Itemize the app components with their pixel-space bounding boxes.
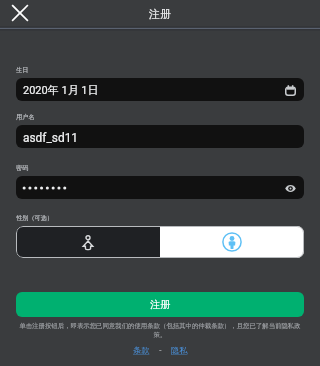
button[interactable]: Close xyxy=(6,0,33,27)
staticText: 单击注册按钮后，即表示您已同意我们的使用条款（包括其中的仲裁条款），且您已了解当… xyxy=(16,322,304,339)
button[interactable]: 2020年 1月 1日 xyxy=(16,78,304,101)
staticText: 注册 xyxy=(149,7,171,21)
staticText: 性别（可选） xyxy=(16,214,54,222)
button[interactable]: asdf_sd11 xyxy=(16,125,304,148)
button[interactable]: Show password xyxy=(16,176,304,199)
staticText: 注册 xyxy=(150,298,170,311)
button[interactable]: Female xyxy=(160,226,304,258)
staticText: 条款 xyxy=(133,345,150,355)
staticText: 生日 xyxy=(16,66,29,74)
staticText: 用户名 xyxy=(16,113,35,121)
staticText: asdf_sd11 xyxy=(23,131,79,145)
button[interactable]: Male xyxy=(16,226,160,258)
staticText: 隐私 xyxy=(171,345,188,355)
staticText: - xyxy=(159,344,162,355)
button[interactable]: Pick date xyxy=(281,81,299,99)
staticText: 2020年 1月 1日 xyxy=(23,83,99,97)
staticText: 密码 xyxy=(16,164,29,172)
button[interactable]: Show password xyxy=(281,179,299,197)
button[interactable]: 条款 xyxy=(133,345,150,355)
button[interactable]: 注册 xyxy=(16,292,304,317)
button[interactable]: 隐私 xyxy=(171,345,188,355)
